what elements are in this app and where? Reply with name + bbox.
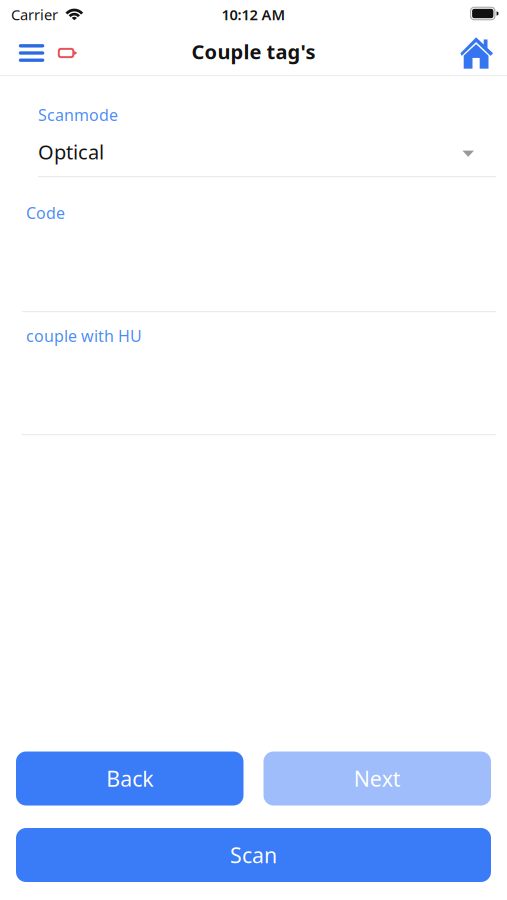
staticText: Couple tag's	[191, 38, 315, 65]
button[interactable]: Menu	[19, 32, 44, 70]
button[interactable]: Home	[460, 32, 493, 70]
staticText: 10:12 AM	[221, 5, 285, 24]
button[interactable]: Scan	[16, 828, 491, 882]
button[interactable]: Next	[263, 751, 491, 805]
staticText: couple with HU	[26, 325, 142, 346]
button[interactable]: Back	[16, 751, 243, 805]
staticText: Optical	[38, 138, 104, 165]
staticText: Code	[26, 202, 65, 223]
staticText: Next	[354, 764, 401, 793]
button[interactable]: Battery status	[58, 32, 77, 70]
staticText: Scan	[230, 841, 277, 869]
staticText: Scanmode	[38, 104, 118, 125]
staticText: Back	[106, 764, 153, 793]
staticText: Carrier	[11, 5, 58, 24]
